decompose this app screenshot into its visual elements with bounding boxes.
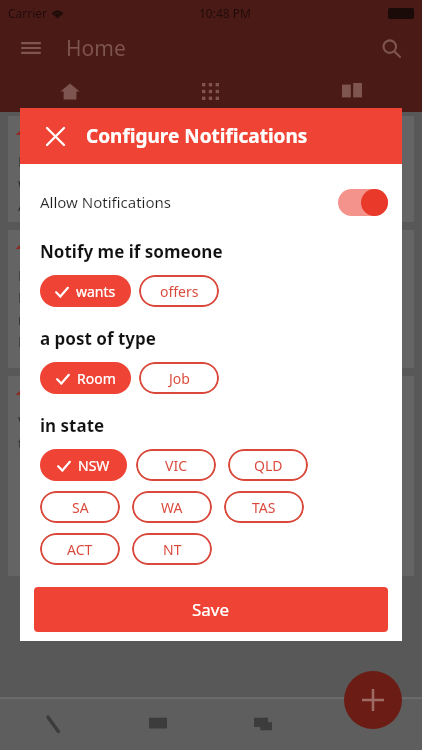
staticText: in state	[40, 414, 105, 437]
staticText: F	[18, 332, 26, 351]
button[interactable]: Book tab	[281, 70, 422, 112]
button[interactable]: Job	[139, 362, 219, 394]
staticText: Allow Notifications	[40, 192, 172, 212]
staticText: f	[18, 354, 23, 358]
button[interactable]: Add post	[344, 671, 402, 729]
button[interactable]: Menu	[18, 35, 44, 61]
staticText: QLD	[254, 456, 283, 475]
staticText: wants	[76, 282, 116, 301]
button[interactable]: SA	[40, 491, 120, 523]
button[interactable]: Allow Notifications toggle	[336, 186, 388, 218]
button[interactable]: VIC	[136, 449, 216, 481]
staticText: ACT	[67, 540, 93, 559]
staticText: Room	[77, 369, 116, 388]
button[interactable]: Chat	[210, 698, 316, 750]
staticText: SA	[72, 498, 89, 517]
staticText: Carrier	[8, 5, 48, 21]
staticText: NT	[163, 540, 182, 559]
button[interactable]: QLD	[228, 449, 308, 481]
staticText: V	[18, 412, 27, 431]
button[interactable]: ACT	[40, 533, 120, 565]
button[interactable]: TAS	[224, 491, 304, 523]
button[interactable]: WA	[132, 491, 212, 523]
button[interactable]: SMS	[105, 698, 210, 750]
staticText: Save	[192, 598, 230, 621]
staticText: Job	[169, 369, 190, 388]
staticText: a post of type	[40, 327, 156, 350]
staticText: Home	[66, 34, 126, 63]
button[interactable]: offers	[139, 275, 219, 307]
button[interactable]: Call	[0, 698, 105, 750]
staticText: Configure Notifications	[86, 123, 308, 149]
button[interactable]: More	[316, 698, 422, 750]
staticText: TAS	[252, 498, 276, 517]
button[interactable]: NSW	[40, 449, 127, 481]
staticText: w...	[18, 174, 40, 193]
button[interactable]: NT	[132, 533, 212, 565]
staticText: offers	[160, 282, 199, 301]
button[interactable]: wants	[40, 275, 131, 307]
staticText: F	[18, 266, 26, 285]
staticText: Notify me if someone	[40, 240, 223, 263]
button[interactable]: Close	[40, 121, 70, 151]
button[interactable]: Grid tab	[140, 70, 281, 112]
button[interactable]: Save	[34, 587, 388, 632]
staticText: L	[18, 288, 26, 307]
staticText: 10:48 PM	[199, 5, 251, 21]
staticText: n	[18, 310, 27, 329]
staticText: A...	[18, 196, 39, 212]
button[interactable]: Room	[40, 362, 131, 394]
button[interactable]: Home tab	[0, 70, 140, 112]
staticText: VIC	[165, 456, 187, 475]
staticText: NSW	[78, 456, 110, 475]
staticText: t	[18, 434, 24, 453]
button[interactable]: Search	[378, 35, 404, 61]
staticText: WA	[161, 498, 183, 517]
staticText: F...	[18, 152, 36, 171]
